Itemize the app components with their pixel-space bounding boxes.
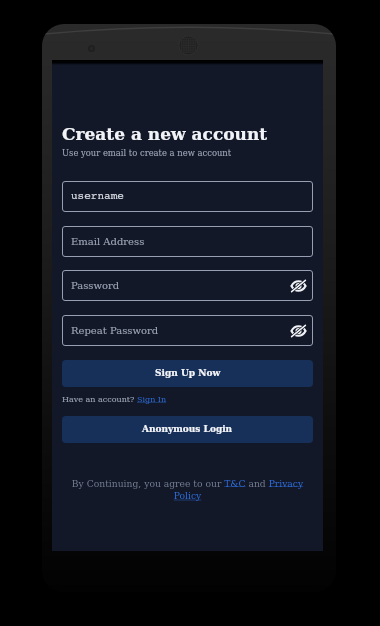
staticText: username xyxy=(71,190,124,203)
staticText: Have an account? xyxy=(62,395,137,404)
button[interactable]: Repeat Password xyxy=(62,315,313,346)
staticText: Email Address xyxy=(71,236,145,248)
button[interactable]: Sign Up Now xyxy=(62,360,313,387)
staticText: Use your email to create a new account xyxy=(62,148,232,158)
staticText: Create a new account xyxy=(62,124,268,144)
staticText: By Continuing, you agree to our T&C and … xyxy=(67,478,308,502)
button[interactable]: By Continuing, you agree to our T&C and … xyxy=(67,478,308,502)
staticText: Anonymous Login xyxy=(142,424,233,435)
button[interactable]: Toggle password visibility xyxy=(291,280,306,292)
button[interactable]: Toggle password visibility xyxy=(291,325,306,337)
button[interactable]: Password xyxy=(62,270,313,301)
staticText: Repeat Password xyxy=(71,325,159,337)
button[interactable]: Anonymous Login xyxy=(62,416,313,443)
button[interactable]: Sign In xyxy=(137,395,167,404)
staticText: Password xyxy=(71,280,120,292)
staticText: Sign Up Now xyxy=(155,368,221,379)
button[interactable]: username xyxy=(62,181,313,212)
button[interactable]: Email Address xyxy=(62,226,313,257)
staticText: Sign In xyxy=(137,395,167,404)
